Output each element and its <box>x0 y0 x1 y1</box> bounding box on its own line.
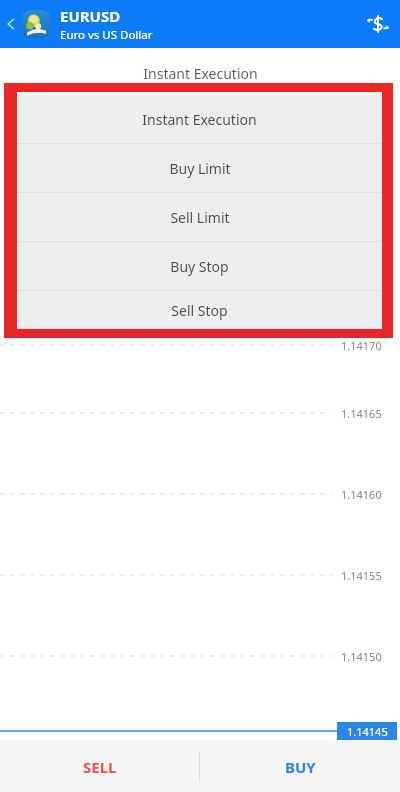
staticText: 1.14155 <box>341 568 382 583</box>
staticText: Euro vs US Dollar <box>60 27 153 43</box>
staticText: SELL <box>83 757 117 777</box>
staticText: 1.14150 <box>341 649 382 664</box>
button[interactable]: Trade <box>356 0 400 48</box>
staticText: Instant Execution <box>142 110 257 129</box>
staticText: Sell Stop <box>171 301 228 320</box>
button[interactable]: Buy Stop <box>17 242 382 290</box>
button[interactable]: Back <box>0 0 22 48</box>
button[interactable]: Instant Execution <box>17 95 382 143</box>
staticText: Instant Execution <box>143 64 258 83</box>
button[interactable]: Sell Stop <box>17 291 382 329</box>
staticText: Buy Limit <box>169 159 231 178</box>
staticText: 1.14160 <box>341 487 382 502</box>
staticText: 1.14145 <box>347 724 388 739</box>
button[interactable]: BUY <box>200 741 400 792</box>
button[interactable]: Buy Limit <box>17 144 382 192</box>
staticText: 1.14170 <box>341 338 382 353</box>
staticText: BUY <box>285 757 316 777</box>
staticText: Sell Limit <box>170 208 230 227</box>
staticText: EURUSD <box>60 6 121 26</box>
button[interactable]: SELL <box>0 741 199 792</box>
staticText: Buy Stop <box>170 257 229 276</box>
staticText: 1.14165 <box>341 406 382 421</box>
button[interactable]: Sell Limit <box>17 193 382 241</box>
